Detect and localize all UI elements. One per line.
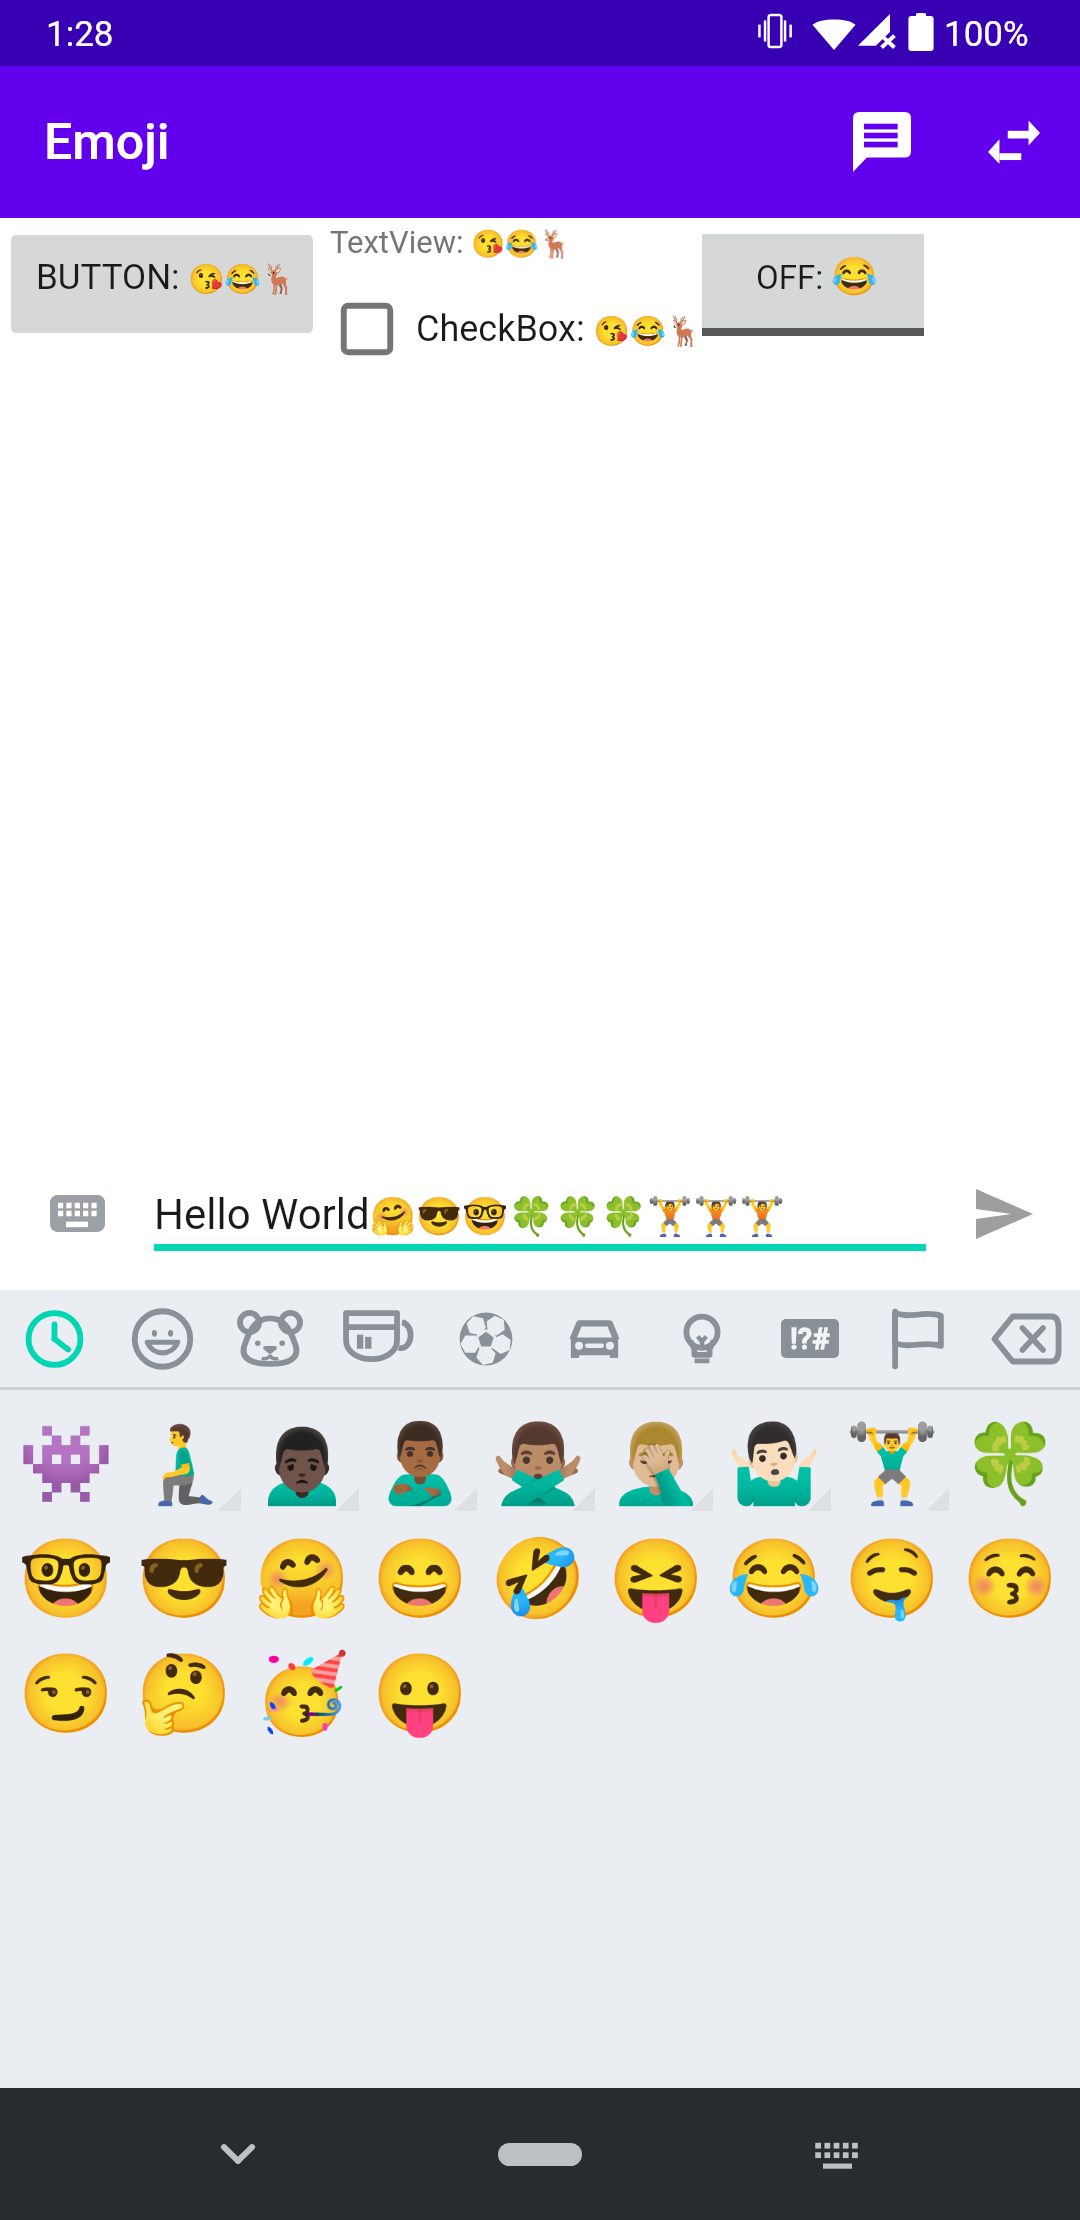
staticText: 🙍🏿‍♂️: [254, 1419, 351, 1509]
staticText: 🧎‍♂️: [136, 1419, 233, 1509]
button[interactable]: 🧎‍♂️: [125, 1406, 243, 1521]
staticText: 😝: [608, 1534, 705, 1624]
staticText: CheckBox: 😘😂🦌: [416, 308, 703, 350]
button[interactable]: Recent: [0, 1290, 108, 1387]
button[interactable]: 😂: [715, 1521, 833, 1636]
staticText: 🤣: [490, 1534, 587, 1624]
button[interactable]: Home: [480, 2109, 600, 2199]
button[interactable]: Show keyboard: [37, 1185, 117, 1241]
button[interactable]: Food: [324, 1290, 432, 1387]
button[interactable]: Objects: [648, 1290, 756, 1387]
button[interactable]: 😎: [125, 1521, 243, 1636]
button[interactable]: Travel: [540, 1290, 648, 1387]
button[interactable]: Messages: [826, 86, 938, 198]
staticText: 🤗: [254, 1534, 351, 1624]
staticText: 🥳: [254, 1649, 351, 1739]
staticText: 🤓: [18, 1534, 115, 1624]
button[interactable]: 😏: [7, 1636, 125, 1751]
button[interactable]: 🤓: [7, 1521, 125, 1636]
button[interactable]: 🙅🏽‍♂️: [479, 1406, 597, 1521]
staticText: 🤤: [844, 1534, 941, 1624]
staticText: 1:28: [46, 14, 114, 55]
button[interactable]: OFF: 😂: [702, 234, 924, 336]
button[interactable]: Symbols: [756, 1290, 864, 1387]
button[interactable]: BUTTON: 😘😂🦌: [11, 235, 313, 333]
staticText: 😚: [962, 1534, 1059, 1624]
staticText: 🏋️‍♂️: [844, 1419, 941, 1509]
staticText: 100%: [944, 14, 1029, 55]
button[interactable]: Flags: [864, 1290, 972, 1387]
staticText: TextView: 😘😂🦌: [330, 224, 573, 260]
staticText: 🙅🏽‍♂️: [490, 1419, 587, 1509]
staticText: BUTTON: 😘😂🦌: [36, 257, 297, 298]
staticText: 🤔: [136, 1649, 233, 1739]
button[interactable]: 👾: [7, 1406, 125, 1521]
staticText: Emoji: [44, 113, 170, 172]
button[interactable]: Send: [958, 1178, 1050, 1250]
button[interactable]: Smileys: [108, 1290, 216, 1387]
staticText: 😄: [372, 1534, 469, 1624]
staticText: OFF: 😂: [756, 255, 878, 298]
button[interactable]: 🤗: [243, 1521, 361, 1636]
button[interactable]: Sports: [432, 1290, 540, 1387]
button[interactable]: Swap: [958, 86, 1070, 198]
button[interactable]: 🤔: [125, 1636, 243, 1751]
staticText: 😏: [18, 1649, 115, 1739]
staticText: Hello World🤗😎🤓🍀🍀🍀🏋️🏋️🏋️: [154, 1190, 786, 1239]
button[interactable]: CheckBox: 😘😂🦌: [336, 294, 703, 364]
staticText: !?#: [790, 1322, 830, 1356]
button[interactable]: 😛: [361, 1636, 479, 1751]
staticText: 😂: [726, 1534, 823, 1624]
button[interactable]: 🤤: [833, 1521, 951, 1636]
button[interactable]: Backspace: [972, 1290, 1080, 1387]
staticText: 😎: [136, 1534, 233, 1624]
button[interactable]: 🏋️‍♂️: [833, 1406, 951, 1521]
button[interactable]: 🍀: [951, 1406, 1069, 1521]
button[interactable]: 🤷🏻‍♂️: [715, 1406, 833, 1521]
button[interactable]: Animals: [216, 1290, 324, 1387]
button[interactable]: 🤣: [479, 1521, 597, 1636]
staticText: 🤷🏻‍♂️: [726, 1419, 823, 1509]
button[interactable]: 😚: [951, 1521, 1069, 1636]
staticText: 🙎🏾‍♂️: [372, 1419, 469, 1509]
button[interactable]: 😄: [361, 1521, 479, 1636]
staticText: 🤦🏼‍♂️: [608, 1419, 705, 1509]
staticText: 😛: [372, 1649, 469, 1739]
button[interactable]: 🤦🏼‍♂️: [597, 1406, 715, 1521]
button[interactable]: 🙍🏿‍♂️: [243, 1406, 361, 1521]
button[interactable]: 🥳: [243, 1636, 361, 1751]
staticText: 🍀: [962, 1419, 1059, 1509]
button[interactable]: 🙎🏾‍♂️: [361, 1406, 479, 1521]
button[interactable]: 😝: [597, 1521, 715, 1636]
staticText: 👾: [18, 1419, 115, 1509]
button[interactable]: Change keyboard: [778, 2109, 898, 2199]
button[interactable]: Dismiss keyboard: [178, 2109, 298, 2199]
